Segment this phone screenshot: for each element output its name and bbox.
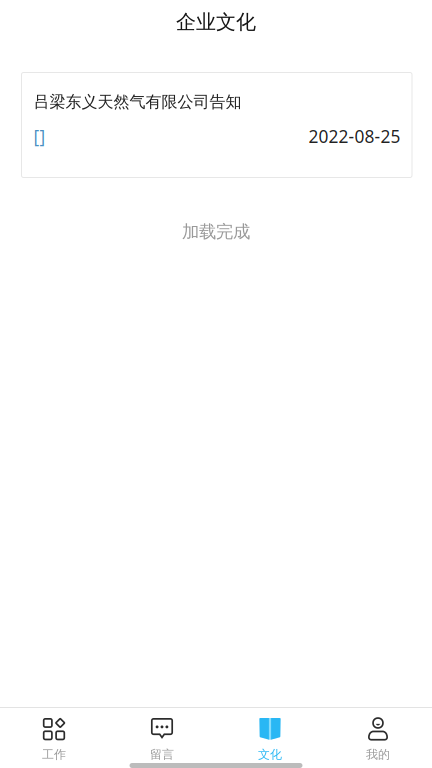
staticText: 吕梁东义天然气有限公司告知 [33,92,241,112]
staticText: 企业文化 [176,10,256,34]
staticText: [] [33,125,45,148]
staticText: 留言 [150,747,174,762]
button[interactable]: 工作 [0,708,108,764]
button[interactable]: 文化 [216,708,324,764]
staticText: 加载完成 [182,221,250,242]
button[interactable]: 留言 [108,708,216,764]
button[interactable]: 我的 [324,708,432,764]
staticText: 文化 [258,747,282,762]
staticText: 2022-08-25 [308,125,400,148]
staticText: 工作 [42,747,66,762]
staticText: 我的 [366,747,390,762]
